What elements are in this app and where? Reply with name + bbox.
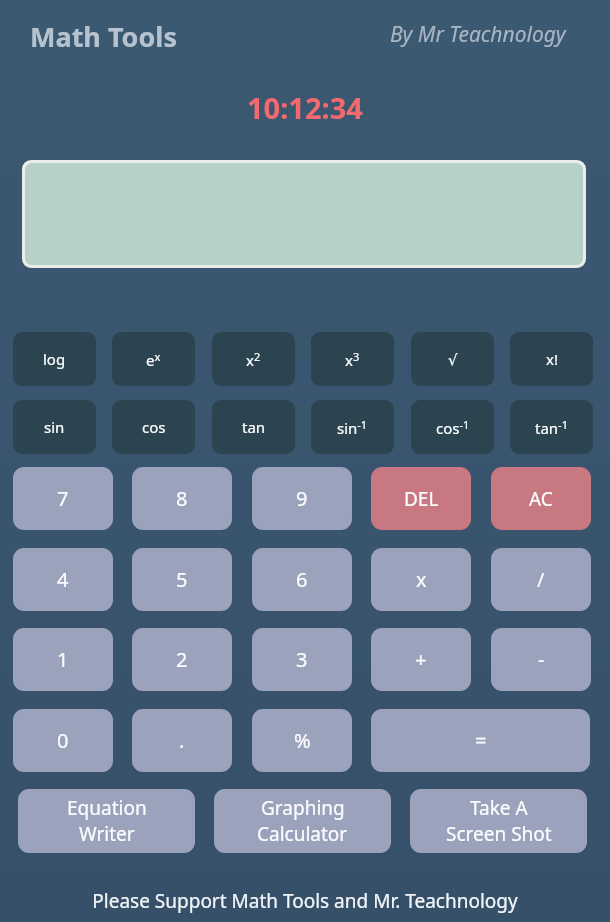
staticText: Writer (79, 821, 135, 847)
staticText: Graphing (261, 795, 345, 821)
staticText: x (416, 566, 427, 593)
staticText: √ (448, 351, 458, 368)
button[interactable]: 0 (13, 709, 113, 772)
button[interactable]: log (13, 332, 96, 386)
button[interactable]: sin (13, 400, 96, 454)
button[interactable]: 8 (132, 467, 232, 530)
button[interactable]: AC (491, 467, 591, 530)
staticText: 6 (296, 566, 308, 593)
staticText: - (538, 646, 545, 673)
staticText: ex (146, 349, 161, 370)
button[interactable]: tan-1 (510, 400, 593, 454)
staticText: DEL (404, 486, 439, 512)
staticText: . (179, 727, 185, 754)
button[interactable]: 6 (252, 548, 352, 611)
staticText: 9 (296, 485, 308, 512)
staticText: Equation (67, 795, 147, 821)
staticText: x! (546, 349, 558, 369)
button[interactable]: cos (112, 400, 195, 454)
staticText: AC (529, 486, 553, 512)
button[interactable]: Take A (410, 789, 587, 853)
button[interactable]: 4 (13, 548, 113, 611)
button[interactable]: x3 (311, 332, 394, 386)
button[interactable]: 9 (252, 467, 352, 530)
staticText: % (294, 727, 311, 754)
staticText: = (475, 727, 487, 754)
staticText: tan-1 (535, 417, 568, 438)
button[interactable]: DEL (371, 467, 471, 530)
staticText: Take A (470, 795, 528, 821)
staticText: / (537, 566, 545, 593)
button[interactable]: sin-1 (311, 400, 394, 454)
button[interactable]: . (132, 709, 232, 772)
staticText: 5 (176, 566, 188, 593)
staticText: + (415, 646, 427, 673)
staticText: sin (44, 417, 65, 437)
button[interactable]: / (491, 548, 591, 611)
staticText: Screen Shot (446, 821, 552, 847)
button[interactable]: 1 (13, 628, 113, 691)
button[interactable]: - (491, 628, 591, 691)
button[interactable]: ex (112, 332, 195, 386)
button[interactable]: x (371, 548, 471, 611)
staticText: tan (242, 417, 266, 437)
button[interactable]: 3 (252, 628, 352, 691)
staticText: 7 (57, 485, 69, 512)
button[interactable]: cos-1 (411, 400, 494, 454)
button[interactable]: √ (411, 332, 494, 386)
staticText: x3 (345, 349, 360, 370)
staticText: 0 (57, 727, 69, 754)
staticText: 3 (296, 646, 308, 673)
button[interactable]: x! (510, 332, 593, 386)
button[interactable]: Equation (18, 789, 195, 853)
button[interactable]: x2 (212, 332, 295, 386)
staticText: Please Support Math Tools and Mr. Teachn… (92, 888, 518, 914)
staticText: Calculator (257, 821, 348, 847)
staticText: cos-1 (436, 417, 470, 438)
button[interactable]: tan (212, 400, 295, 454)
button[interactable]: 7 (13, 467, 113, 530)
button[interactable]: = (371, 709, 590, 772)
button[interactable]: 2 (132, 628, 232, 691)
staticText: 8 (176, 485, 188, 512)
staticText: 2 (176, 646, 188, 673)
staticText: By Mr Teachnology (390, 20, 566, 49)
staticText: 1 (57, 646, 69, 673)
staticText: 4 (57, 566, 69, 593)
staticText: log (43, 349, 66, 369)
button[interactable]: % (252, 709, 352, 772)
button[interactable]: 5 (132, 548, 232, 611)
button[interactable]: + (371, 628, 471, 691)
staticText: cos (142, 417, 166, 437)
staticText: x2 (246, 349, 261, 370)
staticText: Math Tools (30, 18, 177, 55)
staticText: sin-1 (337, 417, 368, 438)
staticText: 10:12:34 (247, 88, 363, 127)
button[interactable]: Graphing (214, 789, 391, 853)
